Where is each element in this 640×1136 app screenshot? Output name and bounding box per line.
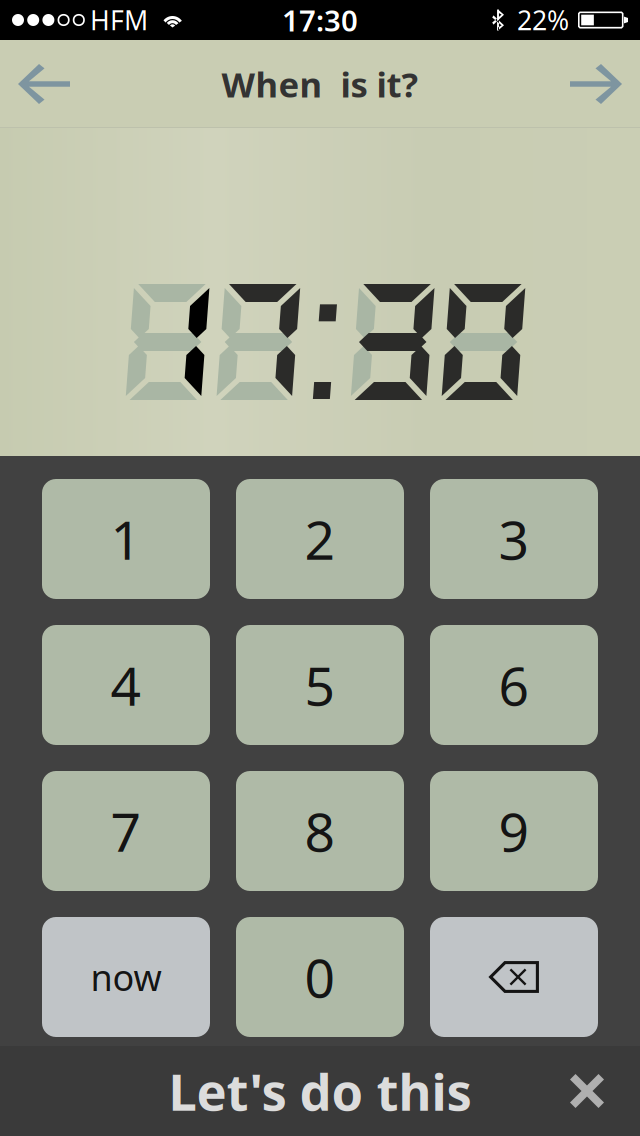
button[interactable]: 6 [430,625,598,745]
staticText: Let's do this [168,1057,471,1125]
staticText: When is it? [221,61,418,107]
button[interactable]: 5 [236,625,404,745]
staticText: 6 [498,650,529,720]
button[interactable]: Let's do this [0,1046,640,1136]
button[interactable]: 4 [42,625,210,745]
staticText: 22% [517,2,569,38]
button[interactable]: Previous [0,40,88,127]
staticText: 0 [304,942,335,1012]
staticText: 2 [304,504,335,574]
staticText: 9 [498,796,529,866]
button[interactable]: 1 [42,479,210,599]
staticText: 7 [110,796,141,866]
button[interactable]: 8 [236,771,404,891]
staticText: 5 [304,650,335,720]
staticText: 3 [498,504,529,574]
staticText: now [90,953,161,1001]
button[interactable]: now [42,917,210,1037]
button[interactable]: 3 [430,479,598,599]
staticText: 8 [304,796,335,866]
button[interactable]: 7 [42,771,210,891]
staticText: 17:30 [282,0,358,39]
staticText: 4 [110,650,141,720]
staticText: 1 [110,504,141,574]
button[interactable] [430,917,598,1037]
button[interactable]: 9 [430,771,598,891]
button[interactable]: Next [552,40,640,127]
button[interactable]: 0 [236,917,404,1037]
button[interactable]: 2 [236,479,404,599]
staticText: HFM [90,2,148,38]
button[interactable]: Close [534,1046,640,1136]
